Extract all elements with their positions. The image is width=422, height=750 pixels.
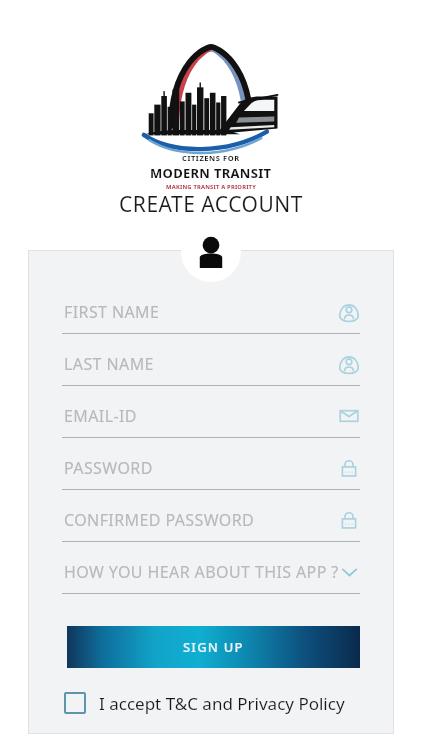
staticText: HOW YOU HEAR ABOUT THIS APP ? <box>64 561 339 583</box>
staticText: MODERN TRANSIT <box>150 164 272 182</box>
button[interactable]: SIGN UP <box>67 626 360 668</box>
button[interactable]: HOW YOU HEAR ABOUT THIS APP ? <box>28 552 394 604</box>
button[interactable]: I accept T&C and Privacy Policy <box>64 684 374 722</box>
button[interactable]: EMAIL-ID <box>28 396 394 448</box>
staticText: CREATE ACCOUNT <box>0 190 422 219</box>
staticText: LAST NAME <box>64 353 154 375</box>
staticText: CONFIRMED PASSWORD <box>64 509 255 531</box>
button[interactable]: CONFIRMED PASSWORD <box>28 500 394 552</box>
button[interactable]: FIRST NAME <box>28 292 394 344</box>
button[interactable]: Profile photo <box>181 222 241 282</box>
staticText: SIGN UP <box>183 638 244 656</box>
staticText: PASSWORD <box>64 457 153 479</box>
staticText: MAKING TRANSIT A PRIORITY <box>166 183 256 191</box>
staticText: EMAIL-ID <box>64 405 137 427</box>
button[interactable]: PASSWORD <box>28 448 394 500</box>
staticText: FIRST NAME <box>64 301 160 323</box>
button[interactable]: LAST NAME <box>28 344 394 396</box>
staticText: I accept T&C and Privacy Policy <box>99 692 345 715</box>
staticText: CITIZENS FOR <box>182 153 240 163</box>
